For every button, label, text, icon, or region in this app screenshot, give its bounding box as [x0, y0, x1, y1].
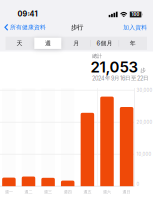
staticText: 步行 [71, 23, 83, 31]
button[interactable]: 週 [34, 37, 62, 50]
staticText: 週日 [123, 189, 131, 194]
button[interactable]: 天 [6, 37, 34, 50]
staticText: 天 [17, 40, 23, 47]
staticText: 步 [140, 67, 146, 74]
staticText: 所有健康資料 [10, 24, 46, 31]
staticText: 週二 [24, 189, 32, 194]
staticText: 加入資料 [123, 24, 147, 31]
button[interactable]: 6個月 [90, 37, 118, 50]
staticText: 20,000 [136, 120, 152, 125]
staticText: 週六 [103, 189, 111, 194]
staticText: 週三 [44, 189, 52, 194]
staticText: 10,000 [136, 152, 151, 157]
button[interactable]: 所有健康資料 [4, 24, 46, 31]
staticText: 年 [130, 40, 136, 47]
staticText: 週四 [64, 189, 72, 194]
staticText: 週 [45, 40, 51, 47]
staticText: 09:41 [17, 9, 37, 18]
staticText: 100 [132, 12, 140, 17]
staticText: 月 [73, 40, 79, 47]
button[interactable]: 年 [119, 37, 147, 50]
staticText: 0 [136, 182, 139, 187]
staticText: 30,000 [136, 88, 152, 93]
button[interactable]: 加入資料 [123, 24, 147, 31]
staticText: 週一 [5, 189, 13, 194]
button[interactable]: 月 [62, 37, 90, 50]
staticText: 21,053 [90, 58, 138, 76]
staticText: 總計 [92, 53, 102, 59]
staticText: 2024年9月16日至22日 [92, 75, 149, 82]
staticText: 6個月 [96, 40, 112, 47]
staticText: 週五 [83, 189, 91, 194]
